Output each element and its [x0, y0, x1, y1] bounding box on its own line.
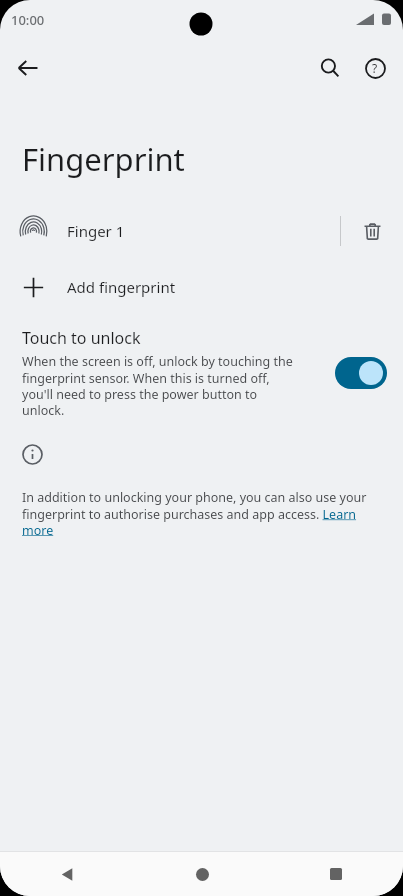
- button[interactable]: Touch to unlock: [0, 327, 403, 418]
- button[interactable]: Recent apps: [269, 852, 403, 896]
- staticText: ?: [372, 60, 378, 76]
- button[interactable]: Search: [310, 48, 350, 88]
- button[interactable]: Touch to unlock toggle: [335, 357, 387, 389]
- staticText: Add fingerprint: [67, 277, 176, 297]
- staticText: Fingerprint: [22, 138, 185, 180]
- staticText: In addition to unlocking your phone, you…: [22, 489, 389, 538]
- button[interactable]: Add fingerprint: [0, 267, 403, 307]
- button[interactable]: Finger 1: [0, 211, 340, 251]
- button[interactable]: Back: [8, 48, 48, 88]
- staticText: Finger 1: [67, 221, 125, 241]
- button[interactable]: Back: [0, 852, 135, 896]
- button[interactable]: Home: [135, 852, 269, 896]
- staticText: When the screen is off, unlock by touchi…: [22, 353, 294, 418]
- button[interactable]: Help: [355, 48, 395, 88]
- staticText: 10:00: [11, 11, 45, 29]
- button[interactable]: Delete fingerprint: [341, 211, 403, 251]
- staticText: Touch to unlock: [22, 327, 141, 349]
